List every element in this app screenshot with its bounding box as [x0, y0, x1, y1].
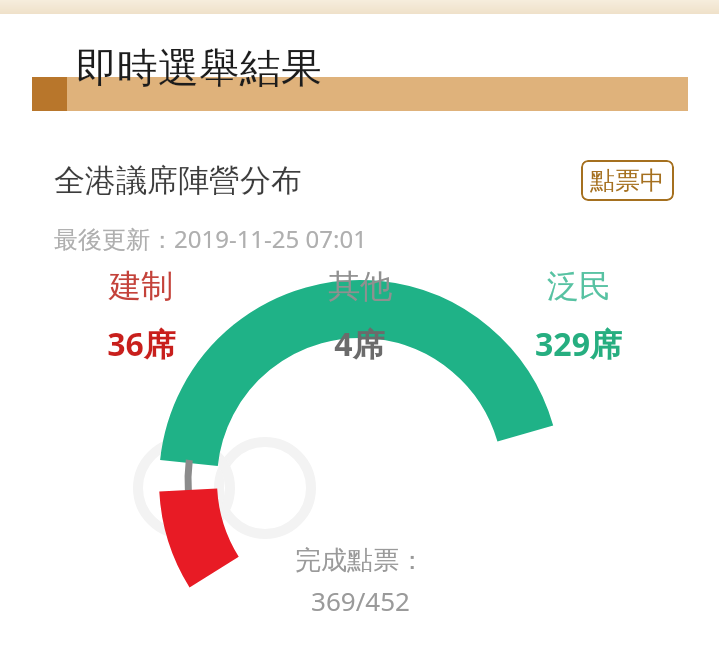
button[interactable]: 泛民: [469, 266, 688, 366]
staticText: 完成點票：: [295, 544, 425, 577]
staticText: 最後更新：2019-11-25 07:01: [54, 222, 367, 255]
staticText: 即時選舉結果: [76, 43, 322, 95]
staticText: 369/452: [311, 583, 410, 618]
staticText: 其他: [328, 266, 392, 306]
staticText: 4席: [334, 322, 385, 366]
button[interactable]: 全港議席陣營分布: [32, 136, 688, 636]
staticText: 329席: [535, 322, 622, 366]
button[interactable]: 建制: [32, 266, 250, 366]
staticText: 建制: [109, 266, 173, 306]
staticText: 36席: [107, 322, 176, 366]
button[interactable]: 點票中: [581, 160, 674, 201]
button[interactable]: 其他: [250, 266, 469, 366]
staticText: 全港議席陣營分布: [54, 161, 581, 200]
staticText: 點票中: [590, 165, 665, 196]
staticText: 泛民: [547, 266, 611, 306]
